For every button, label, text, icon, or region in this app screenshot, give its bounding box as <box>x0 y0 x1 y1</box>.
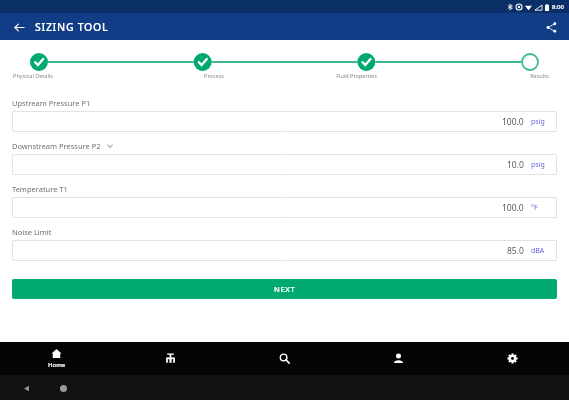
button[interactable]: Valves <box>113 353 227 364</box>
button[interactable]: Account <box>341 353 455 364</box>
button[interactable]: Share <box>541 17 561 37</box>
staticText: Noise Limit <box>12 227 52 237</box>
staticText: Downstream Pressure P2 <box>12 141 101 151</box>
staticText: 100.0 <box>502 116 524 128</box>
button[interactable]: 100.0 <box>12 197 557 218</box>
button[interactable]: Home <box>0 348 113 369</box>
staticText: NEXT <box>274 284 296 294</box>
button[interactable]: 85.0 <box>12 240 557 261</box>
staticText: 100.0 <box>502 202 524 214</box>
staticText: psig <box>531 160 545 170</box>
staticText: Fluid Properties <box>336 72 377 79</box>
button[interactable]: Settings <box>455 353 569 364</box>
staticText: dBA <box>531 246 545 256</box>
staticText: SIZING TOOL <box>35 20 109 34</box>
staticText: 85.0 <box>507 245 524 257</box>
staticText: Physical Details <box>13 72 53 79</box>
button[interactable]: Back <box>9 17 29 37</box>
staticText: Upstream Pressure P1 <box>12 98 91 108</box>
button[interactable]: 10.0 <box>12 154 557 175</box>
staticText: Home <box>48 361 66 369</box>
staticText: °F <box>531 203 538 213</box>
button[interactable]: Back <box>18 380 34 396</box>
staticText: Temperature T1 <box>12 184 68 194</box>
staticText: Process <box>204 72 224 79</box>
button[interactable]: NEXT <box>12 279 557 299</box>
button[interactable]: Select unit <box>105 141 115 151</box>
staticText: 8:00 <box>552 3 564 11</box>
staticText: psig <box>531 117 545 127</box>
staticText: 10.0 <box>507 159 524 171</box>
button[interactable]: Search <box>227 353 341 364</box>
button[interactable]: 100.0 <box>12 111 557 132</box>
button[interactable]: Home <box>55 380 71 396</box>
staticText: Results <box>530 72 549 79</box>
